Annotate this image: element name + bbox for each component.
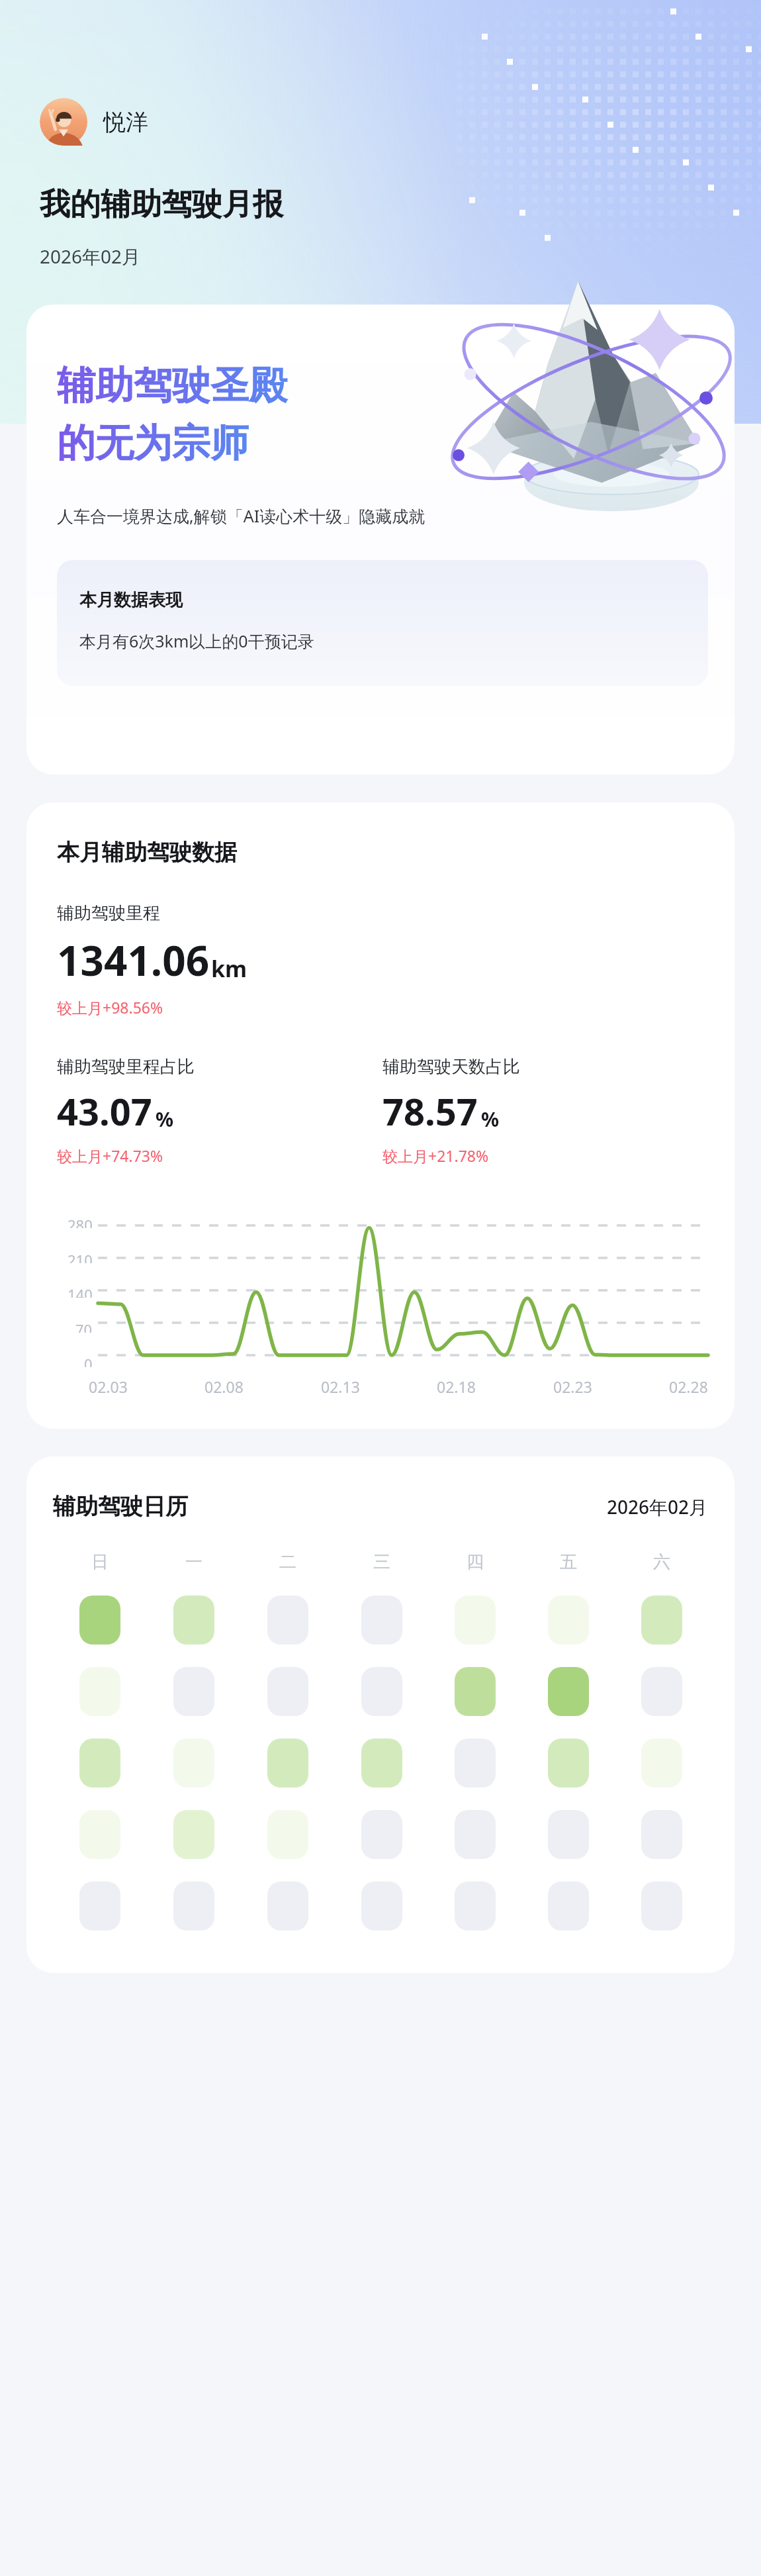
staticText: 02.28 [669, 1376, 708, 1397]
staticText: 280 [67, 1215, 93, 1228]
button[interactable] [455, 1667, 496, 1716]
button[interactable] [267, 1596, 308, 1645]
staticText: 02.13 [321, 1376, 360, 1397]
button[interactable] [641, 1882, 682, 1931]
staticText: 43.07 [57, 1086, 152, 1136]
staticText: 70 [75, 1319, 93, 1333]
staticText: 辅助驾驶天数占比 [382, 1056, 520, 1078]
staticText: 0 [84, 1354, 93, 1367]
staticText: 辅助驾驶里程占比 [57, 1056, 195, 1078]
staticText: 人车合一境界达成,解锁「AI读心术十级」隐藏成就 [57, 504, 425, 527]
button[interactable] [548, 1810, 589, 1859]
button[interactable] [361, 1810, 402, 1859]
button[interactable] [361, 1667, 402, 1716]
staticText: 2026年02月 [40, 244, 141, 269]
staticText: 78.57 [382, 1086, 478, 1136]
staticText: 辅助驾驶圣殿 [57, 361, 287, 410]
staticText: 1341.06 [57, 932, 210, 988]
staticText: 210 [67, 1250, 93, 1263]
button[interactable] [79, 1596, 120, 1645]
staticText: 我的辅助驾驶月报 [40, 185, 283, 224]
button[interactable]: 辅助驾驶里程占比 [57, 1056, 382, 1166]
staticText: 02.08 [204, 1376, 244, 1397]
button[interactable]: 悦洋 [40, 98, 148, 146]
staticText: 2026年02月 [607, 1494, 708, 1519]
staticText: km [211, 953, 247, 984]
staticText: 五 [560, 1551, 577, 1573]
staticText: 02.23 [553, 1376, 592, 1397]
button[interactable] [641, 1810, 682, 1859]
staticText: 悦洋 [103, 108, 148, 136]
staticText: 的无为宗师 [57, 419, 249, 467]
button[interactable] [548, 1596, 589, 1645]
button[interactable] [79, 1882, 120, 1931]
button[interactable] [173, 1739, 214, 1788]
button[interactable] [641, 1596, 682, 1645]
button[interactable] [548, 1739, 589, 1788]
button[interactable] [548, 1667, 589, 1716]
staticText: 较上月+21.78% [382, 1145, 489, 1166]
staticText: 本月辅助驾驶数据 [57, 838, 237, 867]
button[interactable] [79, 1810, 120, 1859]
button[interactable] [267, 1882, 308, 1931]
staticText: 较上月+74.73% [57, 1145, 163, 1166]
staticText: 本月有6次3km以上的0干预记录 [79, 630, 314, 652]
button[interactable] [455, 1810, 496, 1859]
button[interactable] [455, 1596, 496, 1645]
button[interactable] [267, 1810, 308, 1859]
staticText: 四 [467, 1551, 484, 1573]
staticText: 02.18 [437, 1376, 476, 1397]
button[interactable] [173, 1667, 214, 1716]
staticText: 六 [653, 1551, 670, 1573]
button[interactable]: 本月数据表现 [57, 560, 708, 686]
button[interactable] [173, 1810, 214, 1859]
button[interactable]: 辅助驾驶日历 [26, 1456, 735, 1973]
button[interactable]: 辅助驾驶天数占比 [382, 1056, 708, 1166]
button[interactable] [79, 1739, 120, 1788]
staticText: 02.03 [89, 1376, 128, 1397]
staticText: 二 [279, 1551, 296, 1573]
button[interactable] [267, 1667, 308, 1716]
staticText: 一 [185, 1551, 202, 1573]
button[interactable] [641, 1667, 682, 1716]
staticText: 三 [373, 1551, 390, 1573]
staticText: 本月数据表现 [79, 589, 183, 611]
staticText: 140 [67, 1284, 93, 1298]
button[interactable] [79, 1667, 120, 1716]
button[interactable] [267, 1739, 308, 1788]
button[interactable] [173, 1596, 214, 1645]
button[interactable] [361, 1596, 402, 1645]
button[interactable]: 辅助驾驶圣殿 [26, 305, 735, 775]
button[interactable] [455, 1739, 496, 1788]
button[interactable]: 本月辅助驾驶数据 [26, 802, 735, 1429]
button[interactable] [455, 1882, 496, 1931]
staticText: 辅助驾驶日历 [53, 1492, 188, 1521]
button[interactable] [173, 1882, 214, 1931]
staticText: 辅助驾驶里程 [57, 902, 160, 924]
button[interactable] [548, 1882, 589, 1931]
staticText: % [481, 1106, 500, 1133]
other: Achievement trophy illustration [437, 268, 728, 506]
button[interactable] [641, 1739, 682, 1788]
staticText: 较上月+98.56% [57, 997, 163, 1018]
button[interactable] [361, 1739, 402, 1788]
staticText: % [156, 1106, 174, 1133]
staticText: 日 [91, 1551, 109, 1573]
button[interactable] [361, 1882, 402, 1931]
